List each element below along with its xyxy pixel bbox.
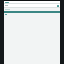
other: Status — [57, 5, 59, 7]
button[interactable] — [4, 1, 60, 3]
button[interactable]: Status — [4, 4, 60, 7]
button[interactable]: Navigate — [4, 13, 60, 15]
button[interactable] — [4, 8, 60, 11]
